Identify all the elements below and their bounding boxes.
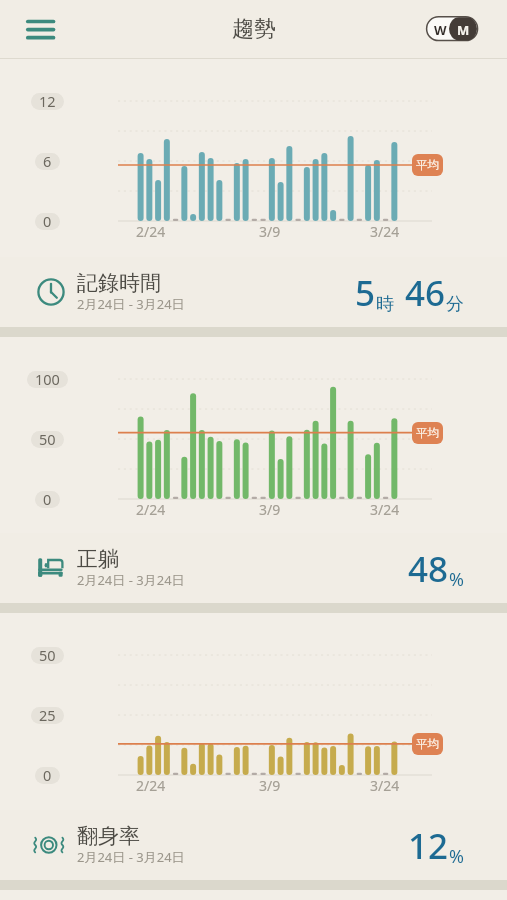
button[interactable]: Menu bbox=[16, 8, 64, 52]
staticText: 46 bbox=[405, 269, 446, 317]
staticText: 記錄時間 bbox=[77, 270, 161, 296]
staticText: 2/24 bbox=[136, 776, 166, 795]
staticText: 0 bbox=[43, 767, 52, 782]
staticText: 50 bbox=[39, 431, 56, 446]
staticText: 2月24日 - 3月24日 bbox=[77, 295, 185, 313]
staticText: 2月24日 - 3月24日 bbox=[77, 848, 185, 866]
staticText: 2/24 bbox=[136, 500, 166, 519]
button[interactable]: 正躺 bbox=[0, 533, 507, 603]
staticText: 12 bbox=[39, 93, 56, 108]
button[interactable]: 翻身率 bbox=[0, 810, 507, 880]
staticText: 3/24 bbox=[370, 222, 400, 241]
staticText: 3/9 bbox=[259, 500, 281, 519]
staticText: 5 bbox=[355, 269, 376, 317]
staticText: 2/24 bbox=[136, 222, 166, 241]
staticText: 分 bbox=[446, 293, 464, 316]
staticText: 翻身率 bbox=[77, 823, 140, 849]
staticText: 0 bbox=[43, 213, 52, 228]
staticText: 平均 bbox=[416, 426, 439, 440]
staticText: % bbox=[449, 567, 464, 592]
staticText: 12 bbox=[408, 822, 449, 870]
staticText: % bbox=[449, 844, 464, 869]
staticText: 0 bbox=[43, 491, 52, 506]
staticText: 100 bbox=[35, 371, 60, 386]
staticText: 48 bbox=[408, 545, 449, 593]
staticText: 3/9 bbox=[259, 222, 281, 241]
staticText: 時 bbox=[376, 293, 394, 316]
staticText: 50 bbox=[39, 647, 56, 662]
staticText: M bbox=[457, 21, 470, 39]
staticText: 3/9 bbox=[259, 776, 281, 795]
staticText: 趨勢 bbox=[232, 15, 276, 43]
staticText: 平均 bbox=[416, 158, 439, 172]
staticText: 3/24 bbox=[370, 500, 400, 519]
staticText: 6 bbox=[43, 153, 52, 168]
staticText: W bbox=[434, 21, 447, 39]
button[interactable]: 記錄時間 bbox=[0, 257, 507, 327]
staticText: 3/24 bbox=[370, 776, 400, 795]
staticText: 25 bbox=[39, 707, 56, 722]
button[interactable]: Week Month toggle bbox=[424, 14, 480, 43]
staticText: 正躺 bbox=[77, 546, 119, 572]
staticText: 平均 bbox=[416, 737, 439, 751]
staticText: 2月24日 - 3月24日 bbox=[77, 571, 185, 589]
